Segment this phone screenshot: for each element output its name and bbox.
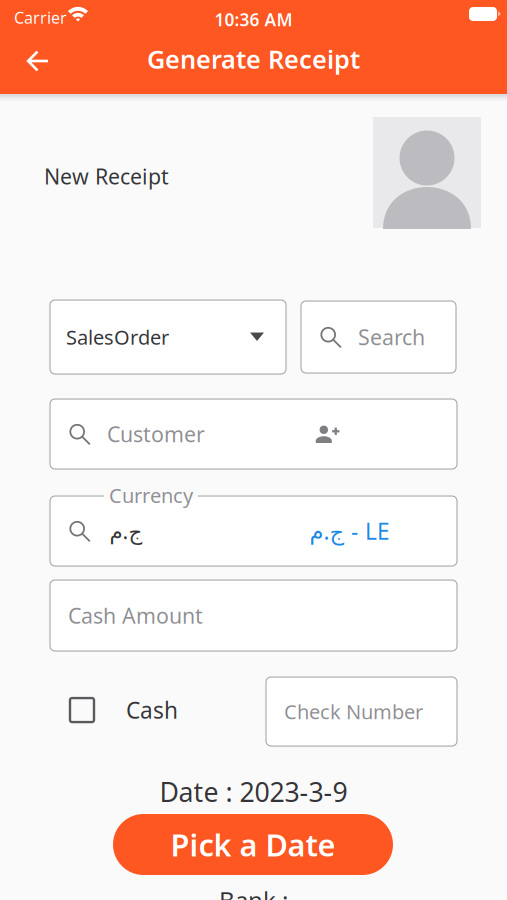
button[interactable]: Cash — [70, 695, 178, 725]
staticText: ج.م — [309, 516, 344, 546]
staticText: - — [351, 516, 358, 546]
staticText: Date : 2023-3-9 — [159, 774, 347, 809]
staticText: Generate Receipt — [147, 42, 360, 76]
staticText: Bank : — [219, 884, 288, 900]
staticText: Search — [358, 323, 425, 351]
button[interactable]: SalesOrder — [50, 300, 286, 374]
button[interactable]: Customer — [50, 399, 457, 469]
staticText: ج.م — [109, 517, 142, 545]
staticText: Pick a Date — [170, 824, 335, 865]
staticText: Carrier — [14, 7, 67, 28]
staticText: SalesOrder — [66, 324, 169, 350]
staticText: LE — [365, 516, 390, 546]
button[interactable]: Profile photo — [373, 117, 481, 228]
staticText: Cash — [126, 695, 178, 725]
staticText: Cash Amount — [68, 601, 203, 630]
button[interactable]: ج.م — [50, 496, 457, 566]
button[interactable]: Pick a Date — [113, 814, 393, 875]
button[interactable]: Check Number — [266, 677, 457, 746]
staticText: 10:36 AM — [214, 8, 292, 31]
staticText: New Receipt — [44, 162, 169, 190]
button[interactable]: Search — [301, 301, 456, 373]
button[interactable]: Back — [12, 35, 64, 87]
staticText: Currency — [109, 482, 193, 509]
button[interactable]: Cash Amount — [50, 580, 457, 651]
staticText: Customer — [107, 420, 205, 448]
staticText: Check Number — [284, 698, 423, 725]
